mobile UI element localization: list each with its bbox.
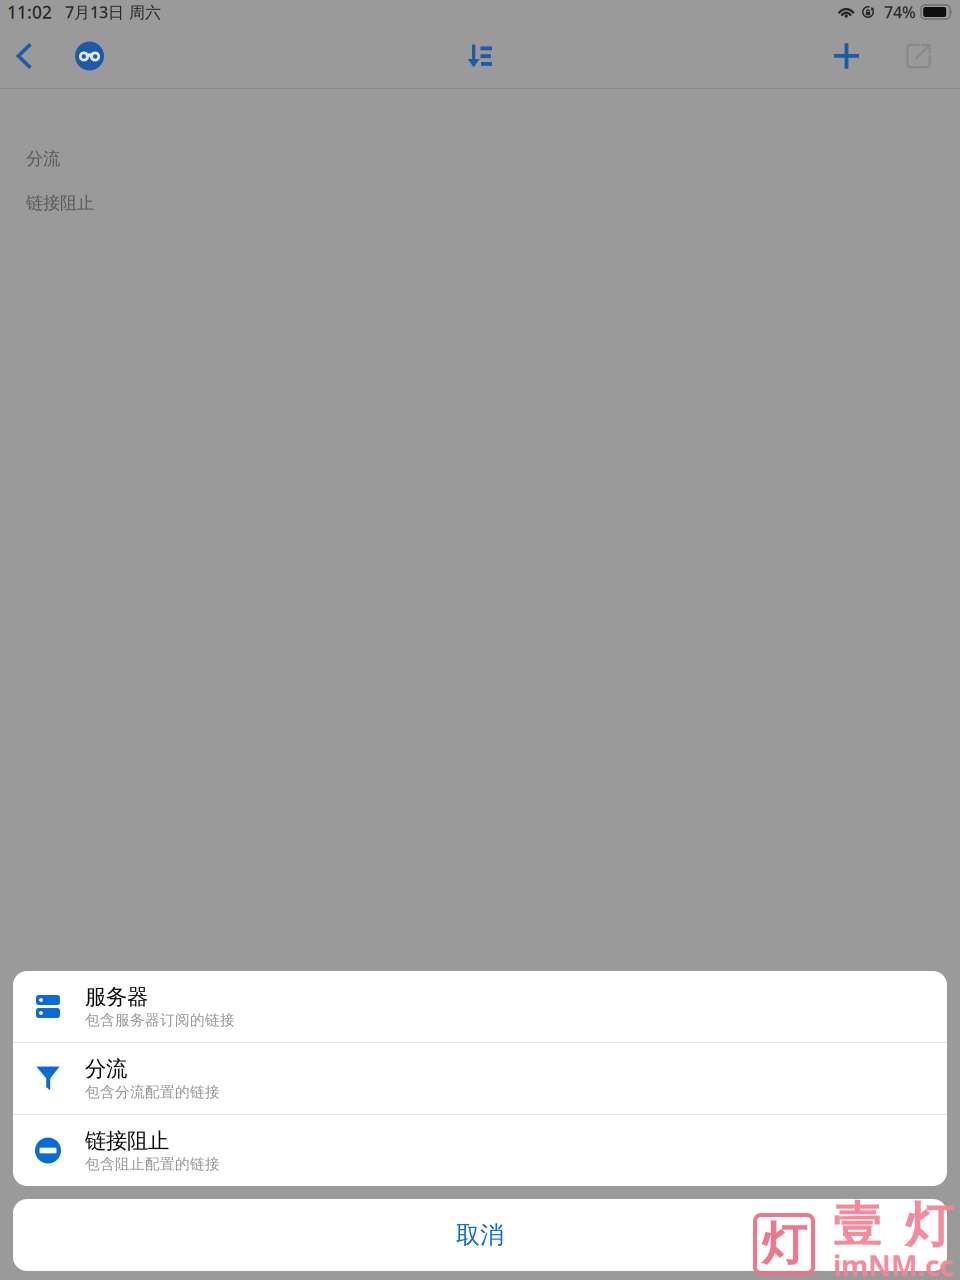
- staticText: 包含阻止配置的链接: [85, 1155, 220, 1173]
- staticText: 分流: [26, 148, 60, 169]
- button[interactable]: 取消: [13, 1199, 947, 1271]
- staticText: 灯: [905, 1196, 953, 1255]
- button[interactable]: Export: [896, 35, 941, 76]
- button[interactable]: Add: [824, 35, 869, 77]
- button[interactable]: Sort order: [457, 36, 502, 76]
- staticText: 灯: [761, 1216, 806, 1272]
- button[interactable]: 分流: [13, 1043, 947, 1114]
- button[interactable]: 服务器: [13, 971, 947, 1042]
- staticText: 74%: [884, 1, 916, 23]
- staticText: 分流: [85, 1056, 127, 1082]
- staticText: 服务器: [85, 984, 148, 1010]
- staticText: 取消: [456, 1220, 504, 1250]
- staticText: 链接阻止: [26, 192, 94, 214]
- staticText: 壹: [833, 1196, 881, 1255]
- staticText: 包含分流配置的链接: [85, 1083, 220, 1101]
- button[interactable]: Back: [10, 34, 39, 77]
- staticText: 11:02: [7, 0, 52, 23]
- button[interactable]: 链接阻止: [13, 1115, 947, 1186]
- staticText: imNM.cc: [833, 1247, 953, 1280]
- button[interactable]: Profile: [67, 35, 112, 76]
- staticText: 7月13日 周六: [65, 1, 161, 23]
- staticText: 链接阻止: [85, 1128, 169, 1154]
- staticText: 包含服务器订阅的链接: [85, 1011, 235, 1029]
